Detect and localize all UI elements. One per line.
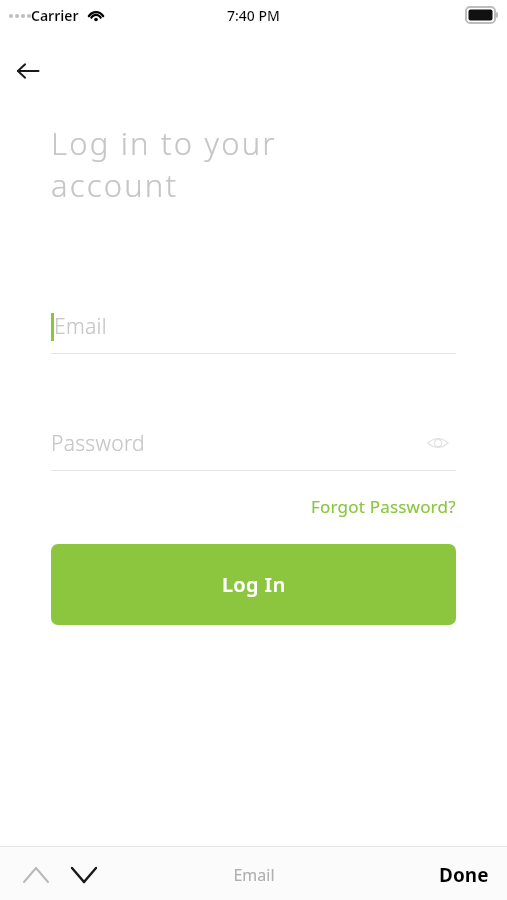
staticText: Forgot Password?: [311, 495, 456, 518]
staticText: Email: [54, 312, 107, 341]
button[interactable]: Log In: [51, 544, 456, 625]
staticText: account: [51, 164, 179, 206]
button[interactable]: Email: [51, 298, 456, 354]
button[interactable]: Done: [421, 854, 507, 896]
staticText: Password: [51, 429, 145, 458]
button[interactable]: Back: [0, 43, 56, 99]
button[interactable]: Forgot Password?: [311, 491, 456, 522]
button[interactable]: Next field: [64, 855, 104, 895]
staticText: Done: [439, 862, 489, 888]
staticText: Log In: [222, 571, 286, 598]
staticText: Carrier: [31, 6, 79, 25]
staticText: 7:40 PM: [227, 6, 280, 25]
staticText: Email: [233, 864, 275, 886]
button[interactable]: Show password: [420, 425, 456, 461]
button[interactable]: Previous field: [16, 855, 56, 895]
button[interactable]: Password: [51, 415, 456, 471]
staticText: Log in to your: [51, 122, 277, 164]
